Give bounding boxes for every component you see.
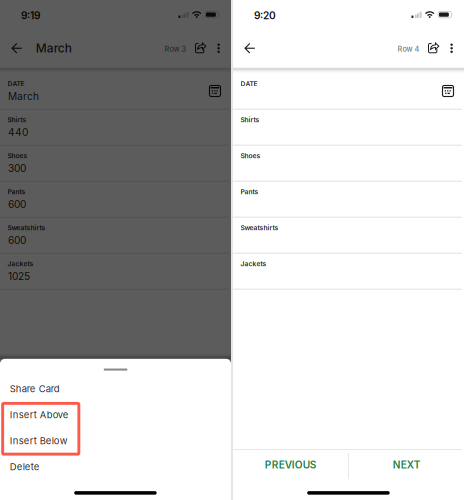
staticText: Shoes — [241, 152, 261, 160]
button[interactable]: PREVIOUS — [233, 449, 348, 483]
staticText: 300 — [8, 162, 26, 174]
staticText: Delete — [10, 461, 40, 473]
staticText: March — [36, 41, 72, 55]
staticText: Row 4 — [397, 45, 419, 54]
button[interactable]: Insert Below — [0, 428, 231, 454]
staticText: 440 — [8, 126, 28, 138]
staticText: Share Card — [10, 383, 60, 395]
staticText: DATE — [8, 80, 25, 88]
staticText: Row 3 — [164, 45, 186, 54]
staticText: 9:20 — [254, 9, 276, 22]
button[interactable]: Pick date — [0, 73, 11, 84]
staticText: Insert Below — [10, 435, 68, 447]
staticText: 9:19 — [21, 9, 40, 22]
button[interactable]: Insert Above — [0, 402, 231, 428]
staticText: Shirts — [241, 116, 260, 124]
staticText: Sweatshirts — [8, 224, 46, 232]
button[interactable]: Pick date — [233, 73, 244, 84]
staticText: Shirts — [8, 116, 27, 124]
staticText: 600 — [8, 198, 26, 210]
button[interactable]: Delete — [0, 454, 231, 480]
staticText: Jackets — [241, 260, 267, 268]
staticText: Pants — [8, 188, 26, 196]
staticText: Jackets — [8, 260, 34, 268]
staticText: 1025 — [8, 270, 30, 282]
staticText: DATE — [241, 80, 258, 88]
staticText: PREVIOUS — [265, 459, 317, 471]
staticText: Sweatshirts — [241, 224, 279, 232]
staticText: Insert Above — [10, 409, 69, 421]
staticText: Shoes — [8, 152, 28, 160]
staticText: Pants — [241, 188, 259, 196]
button[interactable]: Share Card — [0, 376, 231, 402]
staticText: March — [8, 90, 39, 102]
staticText: 600 — [8, 234, 26, 246]
staticText: NEXT — [393, 459, 421, 471]
button[interactable]: NEXT — [233, 449, 348, 483]
